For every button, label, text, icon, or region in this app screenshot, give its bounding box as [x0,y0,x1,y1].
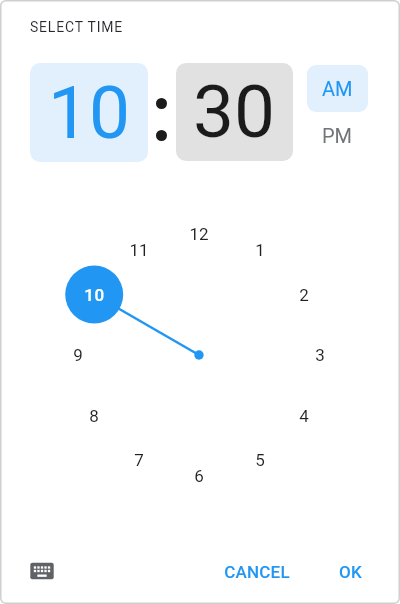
staticText: 4 [299,406,309,426]
staticText: 1 [255,240,265,260]
staticText: 11 [129,240,149,260]
staticText: 2 [299,285,309,305]
button[interactable]: 1 [240,238,280,262]
button[interactable]: 11 [119,238,159,262]
staticText: 7 [134,450,144,470]
button[interactable] [22,551,62,591]
button[interactable]: 10 [74,283,114,307]
staticText: SELECT TIME [30,19,124,35]
staticText: PM [322,124,353,147]
staticText: 9 [73,345,83,365]
staticText: OK [339,562,362,582]
staticText: 12 [189,224,209,244]
button[interactable]: PM [307,112,368,159]
staticText: 10 [84,285,105,305]
button[interactable]: AM [307,65,368,112]
button[interactable]: 30 [176,63,293,161]
button[interactable]: CANCEL [207,554,307,590]
staticText: 6 [194,466,204,486]
staticText: 8 [89,406,99,426]
staticText: 30 [193,69,276,155]
staticText: AM [322,77,353,100]
staticText: 10 [48,70,131,156]
staticText: 5 [255,450,265,470]
button[interactable]: 5 [240,448,280,472]
button[interactable]: 3 [300,343,340,367]
button[interactable]: 10 [30,63,148,162]
button[interactable]: 9 [58,343,98,367]
button[interactable]: 12 [179,222,219,246]
staticText: CANCEL [224,562,290,582]
button[interactable]: 7 [119,448,159,472]
button[interactable]: 2 [284,283,324,307]
button[interactable]: 8 [74,404,114,428]
button[interactable]: 4 [284,404,324,428]
button[interactable]: 6 [179,464,219,488]
button[interactable]: OK [320,554,380,590]
staticText: 3 [315,345,325,365]
